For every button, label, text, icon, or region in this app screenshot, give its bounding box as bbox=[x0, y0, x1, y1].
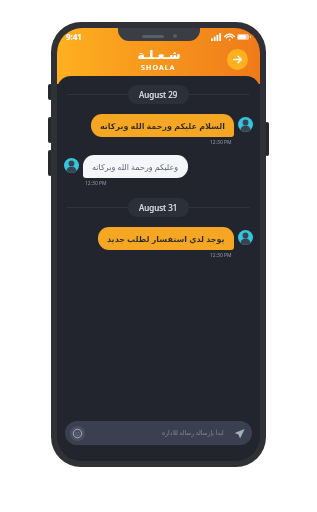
button[interactable]: Emoji bbox=[70, 426, 85, 441]
staticText: SHOALA bbox=[141, 63, 176, 73]
staticText: ابدأ بإرسالة رسالة للاداره bbox=[162, 429, 224, 437]
staticText: 9:41 bbox=[66, 31, 82, 42]
button[interactable]: Emoji bbox=[65, 421, 252, 445]
button[interactable]: Avatar bbox=[238, 117, 253, 132]
button[interactable]: August 29 bbox=[139, 89, 178, 100]
staticText: 12:30 PM bbox=[210, 139, 232, 146]
button[interactable]: August 31 bbox=[139, 202, 178, 213]
button[interactable]: Avatar bbox=[64, 158, 79, 173]
staticText: 12:30 PM bbox=[210, 252, 232, 259]
staticText: السلام عليكم ورحمة الله وبركاته bbox=[100, 120, 225, 131]
staticText: يوجد لدي استفسار لطلب جديد bbox=[107, 233, 225, 244]
button[interactable]: السلام عليكم ورحمة الله وبركاته bbox=[100, 120, 225, 131]
button[interactable]: Send bbox=[231, 425, 247, 441]
button[interactable]: يوجد لدي استفسار لطلب جديد bbox=[107, 233, 225, 244]
button[interactable]: وعليكم ورحمة الله وبركاته bbox=[92, 161, 179, 172]
button[interactable]: Avatar bbox=[238, 230, 253, 245]
staticText: شـعـلـة bbox=[137, 48, 181, 62]
staticText: 12:30 PM bbox=[85, 180, 107, 187]
staticText: وعليكم ورحمة الله وبركاته bbox=[92, 161, 179, 172]
button[interactable]: Forward bbox=[227, 49, 248, 70]
staticText: August 29 bbox=[139, 89, 178, 100]
staticText: August 31 bbox=[139, 202, 178, 213]
